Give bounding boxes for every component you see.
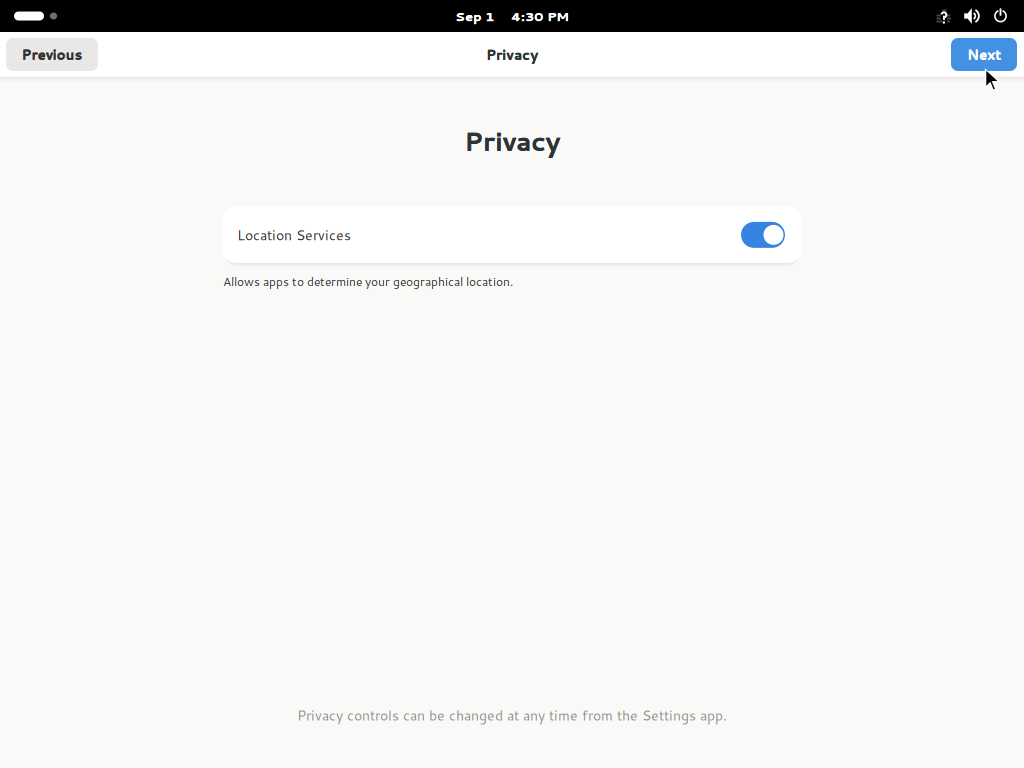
button[interactable]: Volume [952,7,980,24]
button[interactable]: Accessibility [936,6,952,25]
staticText: Privacy controls can be changed at any t… [297,705,727,725]
button[interactable]: Power Off / Log Out [980,7,1008,25]
button[interactable]: Next [951,38,1017,71]
staticText: 4:30 PM [511,7,569,25]
button[interactable]: Previous [6,38,98,71]
staticText: Previous [22,45,83,64]
staticText: Privacy [486,45,538,64]
staticText: Next [968,45,1002,64]
staticText: Privacy [487,45,539,64]
staticText: Sep 1 [455,7,494,25]
staticText: Privacy [486,45,538,64]
staticText: Privacy [464,123,560,159]
staticText: Sep 1 [455,7,494,25]
staticText: Allows apps to determine your geographic… [223,273,513,290]
staticText: 4:30 PM [511,7,569,25]
staticText: Previous [21,45,82,64]
button[interactable]: Location Services [741,222,785,248]
staticText: Location Services [237,225,351,245]
staticText: Next [967,46,1001,64]
staticText: 4:30 PM [512,7,570,25]
staticText: Privacy [464,123,560,159]
staticText: Previous [21,46,82,64]
staticText: Next [967,45,1001,64]
staticText: Sep 1 [456,7,495,25]
staticText: Privacy [465,123,561,159]
